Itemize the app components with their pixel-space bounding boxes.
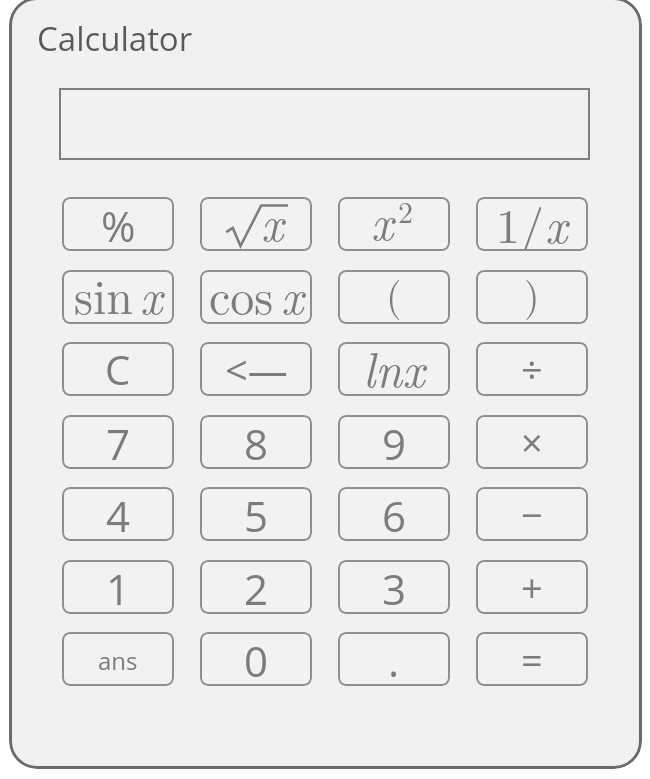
staticText: x: [545, 197, 568, 243]
button[interactable]: 6: [338, 487, 450, 541]
button[interactable]: sin: [62, 270, 174, 324]
staticText: ÷: [521, 343, 543, 395]
staticText: ×: [521, 416, 543, 468]
staticText: 1/: [496, 197, 545, 243]
staticText: x: [281, 270, 304, 314]
button[interactable]: cos: [200, 270, 312, 324]
staticText: (: [386, 270, 402, 319]
staticText: %: [101, 197, 136, 251]
button[interactable]: ×: [476, 415, 588, 469]
button[interactable]: ): [476, 270, 588, 324]
staticText: x: [140, 270, 163, 314]
staticText: 2: [244, 560, 269, 614]
staticText: sin: [74, 270, 133, 314]
staticText: 0: [244, 632, 269, 686]
staticText: =: [521, 633, 543, 685]
staticText: 6: [382, 487, 407, 541]
staticText: 7: [106, 415, 131, 469]
button[interactable]: 2: [200, 560, 312, 614]
staticText: 9: [382, 415, 407, 469]
staticText: +: [521, 561, 543, 613]
button[interactable]: 3: [338, 560, 450, 614]
staticText: 4: [106, 487, 131, 541]
staticText: 3: [382, 560, 407, 614]
staticText: ): [524, 270, 540, 319]
staticText: −: [521, 488, 543, 540]
button[interactable]: 5: [200, 487, 312, 541]
staticText: Calculator: [37, 16, 193, 61]
button[interactable]: +: [476, 560, 588, 614]
button[interactable]: 8: [200, 415, 312, 469]
button[interactable]: [59, 88, 590, 160]
button[interactable]: (: [338, 270, 450, 324]
staticText: lnx: [363, 342, 425, 387]
button[interactable]: C: [62, 342, 174, 396]
staticText: 1: [106, 560, 131, 614]
button[interactable]: %: [62, 197, 174, 251]
button[interactable]: 4: [62, 487, 174, 541]
staticText: .: [388, 632, 400, 686]
button[interactable]: 1: [62, 560, 174, 614]
button[interactable]: x: [338, 197, 450, 251]
staticText: cos: [209, 270, 274, 314]
button[interactable]: ÷: [476, 342, 588, 396]
button[interactable]: 0: [200, 632, 312, 686]
staticText: 5: [244, 487, 269, 541]
button[interactable]: 1/: [476, 197, 588, 251]
button[interactable]: ans: [62, 632, 174, 686]
staticText: <—: [225, 342, 288, 396]
button[interactable]: <—: [200, 342, 312, 396]
staticText: x: [371, 197, 394, 240]
staticText: x: [261, 197, 284, 241]
staticText: ans: [98, 644, 138, 677]
button[interactable]: lnx: [338, 342, 450, 396]
button[interactable]: −: [476, 487, 588, 541]
staticText: 2: [398, 197, 413, 232]
button[interactable]: =: [476, 632, 588, 686]
staticText: 8: [244, 415, 269, 469]
staticText: C: [105, 342, 131, 396]
button[interactable]: x: [200, 197, 312, 251]
button[interactable]: .: [338, 632, 450, 686]
button[interactable]: 9: [338, 415, 450, 469]
button[interactable]: 7: [62, 415, 174, 469]
